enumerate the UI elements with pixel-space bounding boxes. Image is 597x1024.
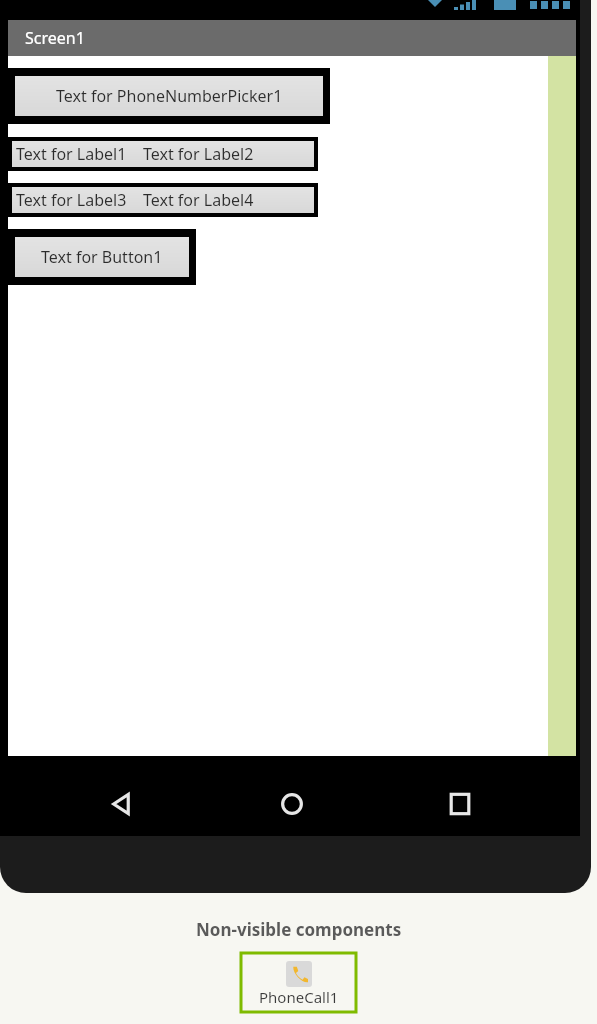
staticText: Text for Label1 Text for Label2 xyxy=(16,143,254,165)
button[interactable]: Recent apps xyxy=(430,774,490,834)
button[interactable]: Text for Label1 Text for Label2 xyxy=(8,137,318,171)
staticText: Text for Button1 xyxy=(41,246,163,268)
button[interactable]: Text for Label3 Text for Label4 xyxy=(8,183,318,217)
button[interactable]: Back xyxy=(92,774,152,834)
button[interactable]: Text for Button1 xyxy=(8,229,196,285)
staticText: Text for Label3 Text for Label4 xyxy=(16,189,254,211)
staticText: Text for PhoneNumberPicker1 xyxy=(56,85,283,107)
staticText: PhoneCall1 xyxy=(259,987,339,1007)
staticText: Non-visible components xyxy=(196,918,402,941)
button[interactable]: Home xyxy=(262,774,322,834)
button[interactable]: PhoneCall1 xyxy=(241,953,356,1012)
staticText: Screen1 xyxy=(25,27,85,49)
button[interactable]: Text for PhoneNumberPicker1 xyxy=(8,68,330,124)
